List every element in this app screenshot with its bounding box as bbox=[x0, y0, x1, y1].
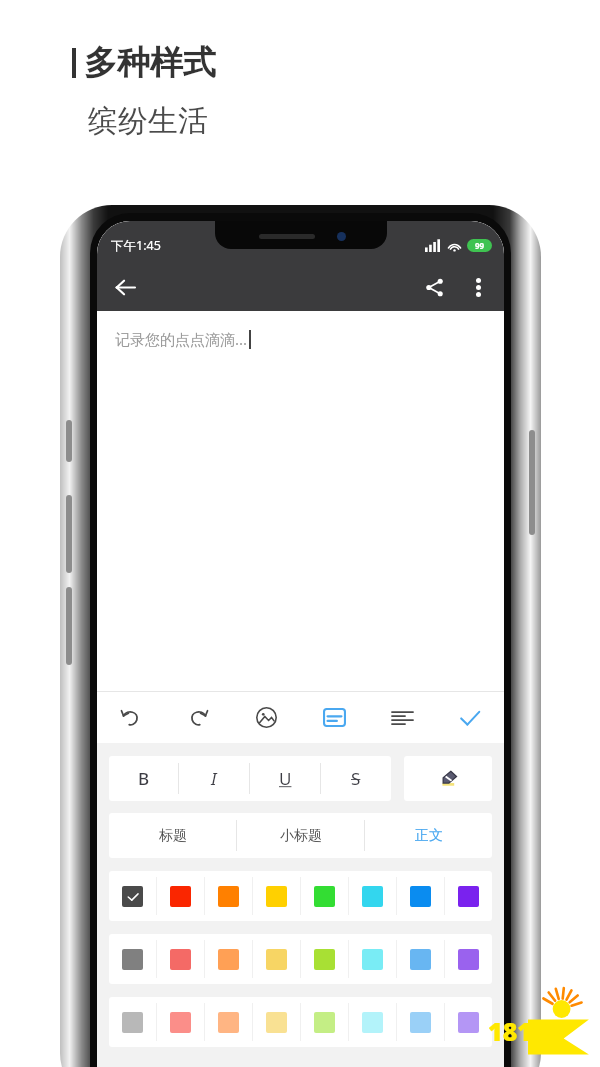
button[interactable]: Colour 3 bbox=[205, 934, 252, 984]
button[interactable]: Colour 1 bbox=[109, 934, 156, 984]
button[interactable]: More options bbox=[456, 265, 500, 309]
staticText: 99 bbox=[475, 240, 485, 251]
staticText: 缤纷生活 bbox=[88, 102, 208, 140]
button[interactable]: Insert image bbox=[232, 692, 300, 743]
staticText: 小标题 bbox=[280, 827, 322, 845]
button[interactable]: 正文 bbox=[365, 813, 492, 858]
button[interactable]: Colour 2 bbox=[157, 934, 204, 984]
button[interactable]: Highlighter bbox=[404, 756, 492, 801]
staticText: 记录您的点点滴滴... bbox=[115, 329, 248, 349]
button[interactable]: Colour 7 bbox=[397, 934, 444, 984]
staticText: 正文 bbox=[415, 827, 443, 845]
button[interactable]: Share bbox=[412, 265, 456, 309]
staticText: S bbox=[351, 767, 361, 790]
button[interactable]: Colour 6 bbox=[349, 934, 396, 984]
button[interactable]: Colour 1 bbox=[109, 871, 156, 921]
button[interactable]: Colour 4 bbox=[253, 871, 300, 921]
button[interactable]: Done bbox=[436, 692, 504, 743]
button[interactable]: Colour 7 bbox=[397, 997, 444, 1047]
button[interactable]: Colour 4 bbox=[253, 997, 300, 1047]
button[interactable]: Text format bbox=[300, 692, 368, 743]
button[interactable]: Colour 2 bbox=[157, 997, 204, 1047]
button[interactable]: Colour 6 bbox=[349, 871, 396, 921]
button[interactable]: I bbox=[179, 756, 249, 801]
button[interactable]: Colour 8 bbox=[445, 871, 492, 921]
staticText: I bbox=[211, 767, 217, 790]
button[interactable]: Colour 5 bbox=[301, 934, 348, 984]
button[interactable]: Undo bbox=[97, 692, 164, 743]
button[interactable]: Colour 8 bbox=[445, 934, 492, 984]
button[interactable]: Colour 6 bbox=[349, 997, 396, 1047]
staticText: 下午1:45 bbox=[111, 237, 161, 254]
button[interactable]: Align bbox=[368, 692, 436, 743]
button[interactable]: Colour 7 bbox=[397, 871, 444, 921]
button[interactable]: Colour 3 bbox=[205, 997, 252, 1047]
button[interactable]: Redo bbox=[164, 692, 232, 743]
staticText: U bbox=[279, 767, 292, 790]
button[interactable]: Colour 5 bbox=[301, 871, 348, 921]
button[interactable]: Colour 1 bbox=[109, 997, 156, 1047]
button[interactable]: Colour 5 bbox=[301, 997, 348, 1047]
staticText: 18183 bbox=[488, 1014, 562, 1048]
button[interactable]: 小标题 bbox=[237, 813, 364, 858]
button[interactable]: Back bbox=[103, 265, 147, 309]
button[interactable]: U bbox=[250, 756, 320, 801]
staticText: 多种样式 bbox=[84, 42, 216, 84]
button[interactable]: Colour 3 bbox=[205, 871, 252, 921]
button[interactable]: Colour 2 bbox=[157, 871, 204, 921]
button[interactable]: 标题 bbox=[109, 813, 236, 858]
button[interactable]: Colour 4 bbox=[253, 934, 300, 984]
button[interactable]: S bbox=[321, 756, 391, 801]
staticText: 标题 bbox=[159, 827, 187, 845]
button[interactable]: Colour 8 bbox=[445, 997, 492, 1047]
button[interactable]: B bbox=[109, 756, 178, 801]
staticText: B bbox=[138, 767, 150, 790]
